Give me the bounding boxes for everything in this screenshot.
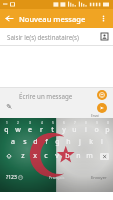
staticText: b	[65, 151, 70, 161]
staticText: Envoi	[91, 114, 113, 118]
staticText: q	[4, 125, 9, 135]
button[interactable]: 4	[36, 120, 47, 135]
button[interactable]: n	[73, 149, 84, 163]
button[interactable]: Écrire un message	[17, 88, 91, 118]
staticText: e	[28, 125, 32, 135]
staticText: 7	[74, 121, 76, 125]
button[interactable]: z	[17, 149, 29, 163]
staticText: Envoyer	[91, 175, 107, 181]
staticText: k	[89, 137, 93, 147]
staticText: 4	[41, 121, 43, 125]
staticText: v	[55, 151, 59, 161]
button[interactable]: j	[74, 135, 85, 149]
button[interactable]: c	[40, 149, 51, 163]
staticText: j	[79, 137, 81, 147]
button[interactable]: g	[52, 135, 63, 149]
staticText: 6	[63, 121, 65, 125]
button[interactable]: Espace	[28, 163, 85, 192]
button[interactable]: Retour	[0, 9, 19, 28]
staticText: n	[76, 151, 81, 161]
button[interactable]: v	[51, 149, 62, 163]
staticText: l	[101, 137, 103, 147]
button[interactable]: Joindre un fichier	[0, 88, 17, 118]
staticText: t	[51, 125, 54, 135]
staticText: Écrire un message	[19, 92, 73, 100]
staticText: g	[55, 137, 60, 147]
staticText: f	[45, 137, 48, 147]
staticText: ?123	[6, 174, 17, 181]
button[interactable]: Plus d'options	[94, 9, 113, 28]
staticText: r	[40, 125, 43, 135]
button[interactable]: Majuscule	[0, 149, 17, 163]
staticText: o	[94, 125, 99, 135]
button[interactable]: b	[62, 149, 73, 163]
staticText: s	[23, 137, 27, 147]
staticText: y	[62, 125, 66, 135]
staticText: 0	[107, 121, 109, 125]
staticText: Saisir le(s) destinataire(s)	[7, 33, 96, 41]
button[interactable]: 2	[12, 120, 24, 135]
staticText: i	[85, 125, 87, 135]
button[interactable]: Envoyer	[85, 163, 113, 192]
staticText: x	[33, 151, 37, 161]
button[interactable]: Envoyer	[97, 103, 107, 113]
staticText: a	[11, 137, 15, 147]
button[interactable]: m	[84, 149, 95, 163]
button[interactable]: Supprimer	[95, 149, 113, 163]
button[interactable]: f	[41, 135, 52, 149]
staticText: 3	[29, 121, 31, 125]
staticText: z	[21, 151, 25, 161]
button[interactable]: x	[29, 149, 40, 163]
button[interactable]: 8	[80, 120, 91, 135]
button[interactable]: Emoji	[97, 90, 107, 100]
staticText: 2	[17, 121, 19, 125]
button[interactable]: 1	[0, 120, 12, 135]
staticText: d	[33, 137, 38, 147]
button[interactable]: s	[19, 135, 30, 149]
staticText: p	[105, 125, 110, 135]
button[interactable]: 5	[47, 120, 58, 135]
staticText: h	[66, 137, 71, 147]
button[interactable]: 3	[24, 120, 36, 135]
staticText: m	[86, 151, 93, 161]
button[interactable]: Saisir le(s) destinataire(s)	[0, 28, 113, 45]
staticText: c	[44, 151, 48, 161]
button[interactable]: k	[85, 135, 96, 149]
staticText: w	[15, 125, 21, 135]
staticText: 8	[85, 121, 87, 125]
staticText: 1	[6, 121, 8, 125]
button[interactable]: a	[7, 135, 19, 149]
button[interactable]: Ajouter un contact	[96, 28, 113, 45]
staticText: Français	[49, 175, 65, 180]
staticText: 9	[96, 121, 98, 125]
staticText: Nouveau message	[19, 14, 94, 24]
button[interactable]: 0	[102, 120, 113, 135]
button[interactable]: d	[30, 135, 41, 149]
button[interactable]: l	[96, 135, 107, 149]
button[interactable]: h	[63, 135, 74, 149]
button[interactable]: 7	[69, 120, 80, 135]
button[interactable]: 6	[58, 120, 69, 135]
staticText: u	[72, 125, 77, 135]
staticText: 5	[52, 121, 54, 125]
button[interactable]: 9	[91, 120, 102, 135]
button[interactable]: ?123	[0, 163, 28, 192]
